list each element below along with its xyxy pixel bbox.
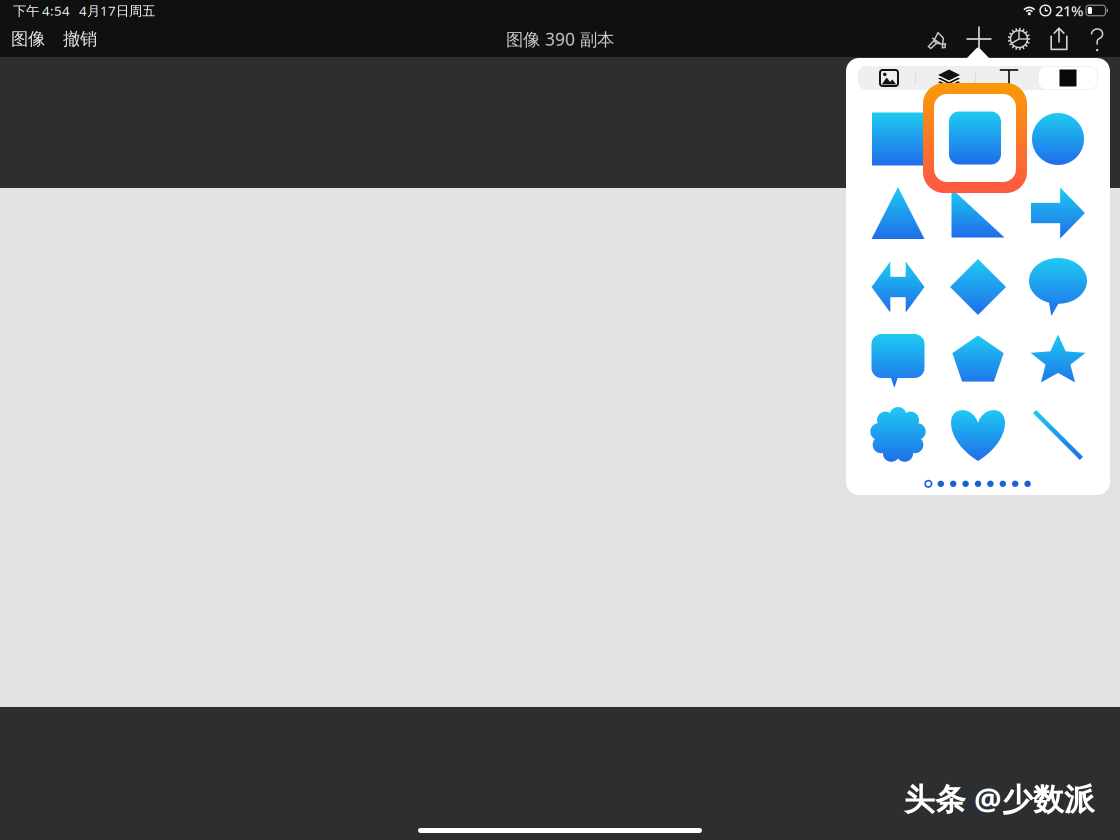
button[interactable]: Add bbox=[959, 24, 999, 54]
button[interactable]: Shape 1 bbox=[858, 102, 938, 176]
staticText: 21% bbox=[1055, 1, 1083, 20]
button[interactable]: Paint bucket bbox=[915, 24, 959, 54]
button[interactable]: Shape 13 bbox=[858, 398, 938, 472]
button[interactable]: Shape 2 bbox=[938, 102, 1018, 176]
button[interactable]: Images bbox=[859, 66, 919, 90]
button[interactable]: Color bbox=[1039, 67, 1097, 89]
staticText: 头条 @少数派 bbox=[904, 778, 1095, 819]
button[interactable]: Adjust bbox=[999, 24, 1039, 54]
staticText: 撤销 bbox=[63, 28, 97, 50]
button[interactable]: Shape 7 bbox=[858, 250, 938, 324]
button[interactable]: Shape 9 bbox=[1018, 250, 1098, 324]
staticText: 图像 bbox=[11, 28, 45, 50]
button[interactable]: Share bbox=[1039, 24, 1079, 54]
button[interactable]: Shape 12 bbox=[1018, 324, 1098, 398]
button[interactable]: Help bbox=[1079, 24, 1115, 54]
button[interactable]: Shape 6 bbox=[1018, 176, 1098, 250]
button[interactable]: Shape 11 bbox=[938, 324, 1018, 398]
button[interactable]: Text bbox=[979, 66, 1039, 90]
button[interactable]: 撤销 bbox=[55, 23, 105, 55]
button[interactable]: 图像 bbox=[5, 23, 51, 55]
button[interactable]: Shape 10 bbox=[858, 324, 938, 398]
button[interactable]: Shape 5 bbox=[938, 176, 1018, 250]
button[interactable]: Shape 15 bbox=[1018, 398, 1098, 472]
button[interactable]: Shapes bbox=[919, 66, 979, 90]
button[interactable]: Shape 14 bbox=[938, 398, 1018, 472]
button[interactable]: Shape 4 bbox=[858, 176, 938, 250]
button[interactable]: Shape 3 bbox=[1018, 102, 1098, 176]
staticText: 图像 390 副本 bbox=[506, 27, 614, 50]
staticText: 下午 4:54 4月17日周五 bbox=[13, 2, 155, 19]
button[interactable]: Shape 8 bbox=[938, 250, 1018, 324]
